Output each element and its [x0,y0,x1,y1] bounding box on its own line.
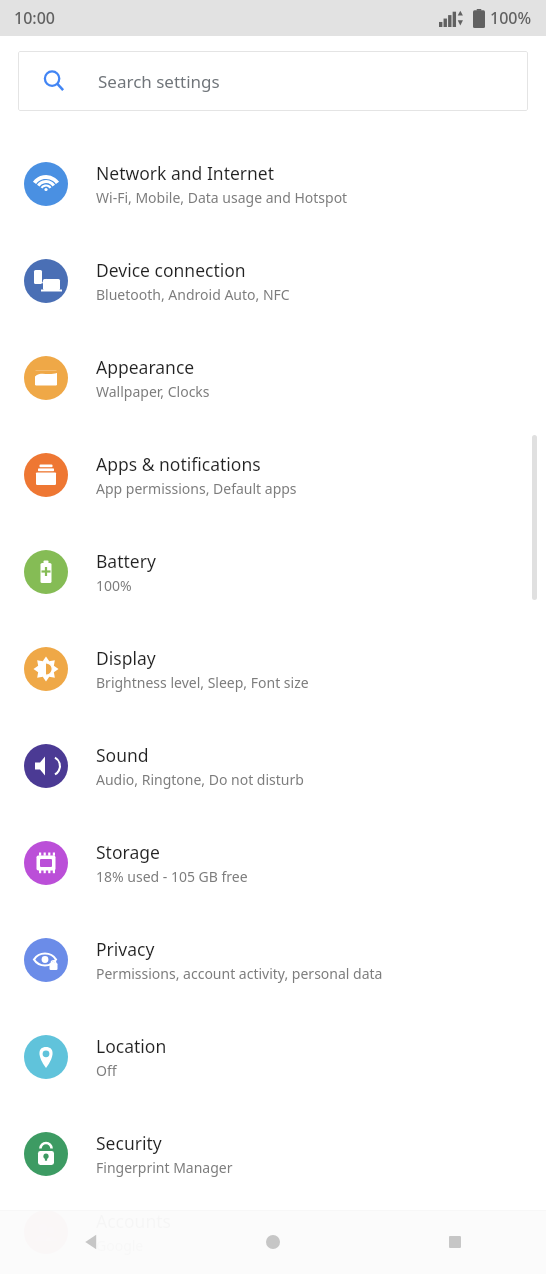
staticText: Device connection [96,258,246,282]
staticText: Bluetooth, Android Auto, NFC [96,285,290,304]
button[interactable]: Home [182,1210,364,1274]
staticText: Permissions, account activity, personal … [96,964,383,983]
button[interactable]: Accounts [0,1202,546,1262]
staticText: Wallpaper, Clocks [96,382,210,401]
staticText: Location [96,1034,167,1058]
staticText: Appearance [96,355,195,379]
button[interactable]: Network and Internet [0,135,546,232]
staticText: Privacy [96,937,155,961]
button[interactable]: Search settings [18,51,528,111]
staticText: App permissions, Default apps [96,479,297,498]
button[interactable]: Storage [0,814,546,911]
staticText: Audio, Ringtone, Do not disturb [96,770,304,789]
staticText: 18% used - 105 GB free [96,867,248,886]
staticText: Network and Internet [96,161,275,185]
staticText: Apps & notifications [96,452,261,476]
staticText: 10:00 [14,7,55,29]
staticText: Fingerprint Manager [96,1158,233,1177]
button[interactable]: Apps & notifications [0,426,546,523]
button[interactable]: Recent apps [364,1210,546,1274]
button[interactable]: Appearance [0,329,546,426]
staticText: Security [96,1131,162,1155]
staticText: Sound [96,743,149,767]
button[interactable]: Device connection [0,232,546,329]
button[interactable]: Location [0,1008,546,1105]
staticText: 100% [490,7,532,29]
staticText: Battery [96,549,156,573]
button[interactable]: Back [0,1210,182,1274]
button[interactable]: Security [0,1105,546,1202]
staticText: Storage [96,840,160,864]
staticText: 100% [96,576,132,595]
staticText: Brightness level, Sleep, Font size [96,673,309,692]
button[interactable]: Sound [0,717,546,814]
staticText: Display [96,646,156,670]
button[interactable]: Battery [0,523,546,620]
button[interactable]: Display [0,620,546,717]
staticText: Off [96,1061,117,1080]
staticText: Wi-Fi, Mobile, Data usage and Hotspot [96,188,348,207]
staticText: Search settings [98,70,220,93]
button[interactable]: Privacy [0,911,546,1008]
